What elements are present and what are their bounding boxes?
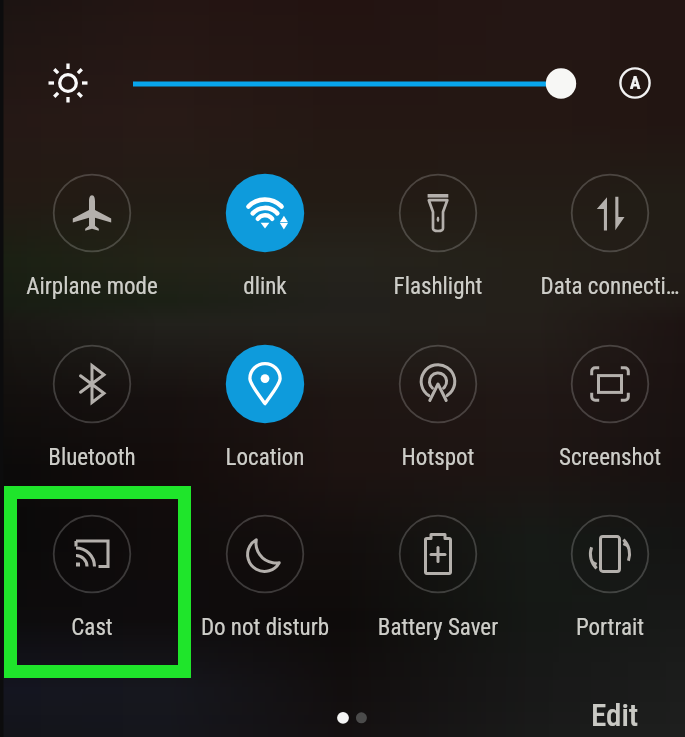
staticText: Flashlight <box>352 273 524 300</box>
staticText: Edit <box>591 697 639 733</box>
staticText: Airplane mode <box>6 273 178 300</box>
button[interactable]: Airplane mode <box>6 159 178 284</box>
button[interactable]: Portrait <box>524 500 685 625</box>
staticText: Data connecti… <box>524 273 685 300</box>
button[interactable]: Data connecti… <box>524 159 685 284</box>
staticText: Cast <box>6 614 178 641</box>
staticText: Hotspot <box>352 444 524 471</box>
button[interactable]: Flashlight <box>352 159 524 284</box>
staticText: Do not disturb <box>179 614 351 641</box>
button[interactable]: Screenshot <box>524 330 685 455</box>
button[interactable]: Location <box>179 330 351 455</box>
button[interactable]: dlink <box>179 159 351 284</box>
staticText: Battery Saver <box>352 614 524 641</box>
button[interactable]: Auto brightness <box>617 65 653 101</box>
staticText: Portrait <box>524 614 685 641</box>
staticText: Screenshot <box>524 444 685 471</box>
button[interactable]: Hotspot <box>352 330 524 455</box>
button[interactable]: Battery Saver <box>352 500 524 625</box>
staticText: Location <box>179 444 351 471</box>
button[interactable]: Edit <box>583 693 647 735</box>
button[interactable]: Brightness <box>120 60 580 108</box>
button[interactable]: Do not disturb <box>179 500 351 625</box>
staticText: Bluetooth <box>6 444 178 471</box>
button[interactable]: Cast <box>6 500 178 625</box>
staticText: dlink <box>179 273 351 300</box>
button[interactable]: Bluetooth <box>6 330 178 455</box>
staticText: A <box>617 72 653 93</box>
